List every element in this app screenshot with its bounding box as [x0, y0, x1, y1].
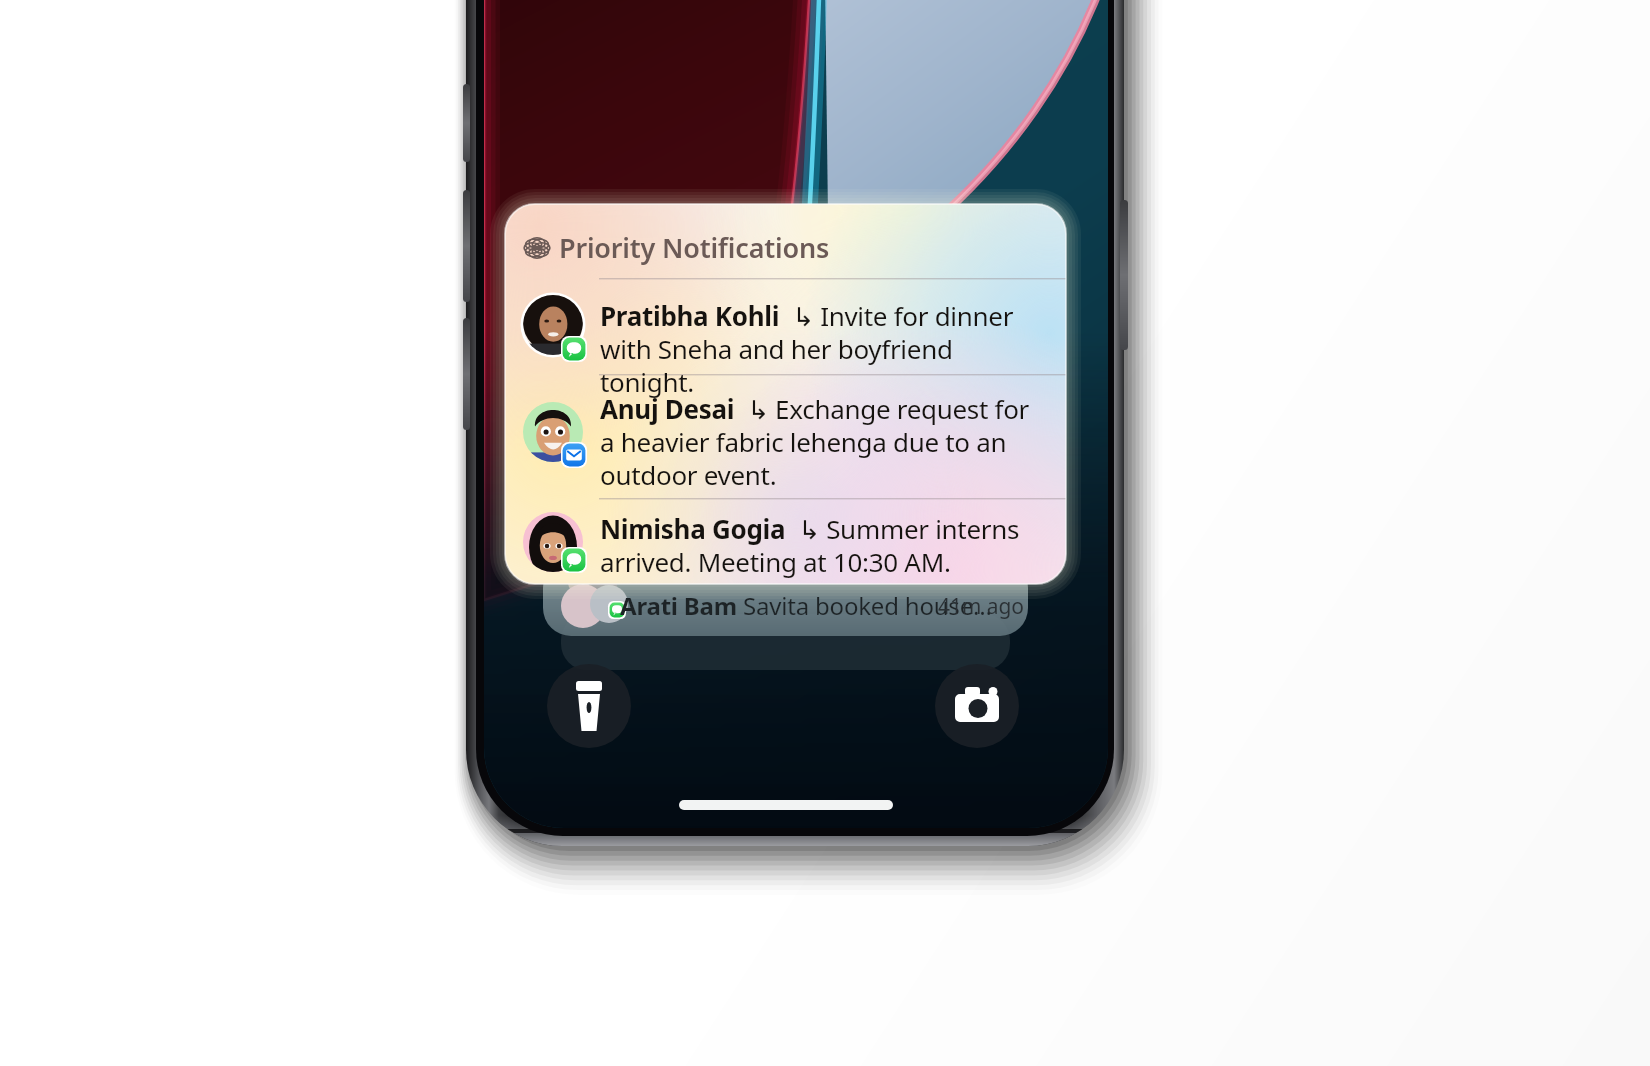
button[interactable]: Pratibha Kohli ↳ Invite for dinner with … [600, 298, 1030, 400]
button[interactable]: Priority Notifications [521, 228, 821, 268]
staticText: 41m ago [938, 592, 1024, 621]
button[interactable]: Arati Bam Savita booked house… [620, 589, 1020, 623]
button[interactable]: Anuj Desai ↳ Exchange request for a heav… [600, 391, 1040, 493]
staticText: Priority Notifications [559, 229, 830, 266]
staticText: Pratibha Kohli ↳ Invite for dinner with … [600, 298, 1030, 400]
staticText: Nimisha Gogia ↳ Summer interns arrived. … [600, 511, 1030, 580]
button[interactable]: Nimisha Gogia ↳ Summer interns arrived. … [600, 511, 1030, 580]
staticText: Arati Bam Savita booked house… [620, 589, 992, 622]
staticText: Anuj Desai ↳ Exchange request for a heav… [600, 391, 1040, 493]
